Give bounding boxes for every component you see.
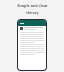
- button[interactable]: [20, 27, 44, 30]
- staticText: Simple and clear: [17, 3, 48, 8]
- staticText: theory: [26, 10, 39, 15]
